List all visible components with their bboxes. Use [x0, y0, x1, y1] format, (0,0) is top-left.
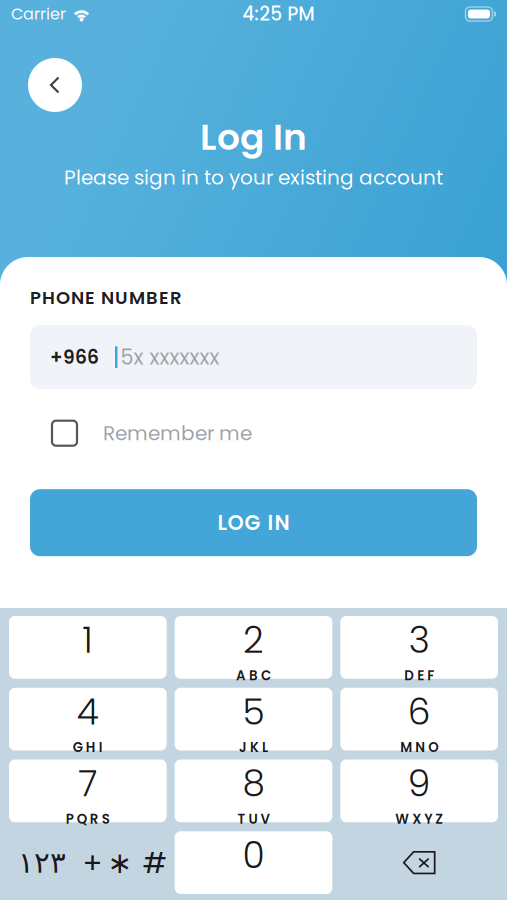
staticText: Remember me	[103, 419, 252, 447]
staticText: 6	[408, 687, 431, 737]
button[interactable]: Symbols	[81, 840, 169, 886]
staticText: 5x xxxxxxx	[120, 343, 219, 372]
staticText: 4	[77, 687, 99, 737]
button[interactable]: 9	[340, 759, 498, 822]
staticText: P H O N E N U M B E R	[30, 285, 182, 310]
button[interactable]: L O G I N	[30, 489, 477, 556]
button[interactable]: 0	[175, 831, 332, 894]
button[interactable]: 3	[340, 616, 498, 679]
staticText: 0	[242, 830, 264, 880]
staticText: M N O	[400, 738, 438, 757]
staticText: ١٢٣	[18, 846, 66, 880]
button[interactable]: 5	[175, 688, 332, 751]
button[interactable]: 6	[340, 688, 498, 751]
staticText: +966	[50, 344, 99, 370]
staticText: 7	[78, 758, 97, 809]
staticText: T U V	[237, 810, 269, 828]
staticText: Please sign in to your existing account	[64, 163, 443, 191]
staticText: 2	[243, 615, 264, 665]
staticText: W X Y Z	[395, 810, 443, 828]
button[interactable]: Arabic numerals	[15, 840, 69, 886]
staticText: L O G I N	[217, 508, 289, 537]
staticText: 4:25 PM	[242, 1, 314, 27]
staticText: + ∗ #	[82, 842, 167, 883]
button[interactable]: Back	[28, 58, 82, 112]
button[interactable]: Remember me	[30, 413, 477, 453]
staticText: A B C	[236, 666, 271, 685]
staticText: 9	[408, 758, 431, 809]
staticText: 3	[409, 615, 430, 665]
staticText: P Q R S	[66, 810, 110, 828]
staticText: 5	[242, 687, 264, 737]
staticText: G H I	[73, 738, 103, 757]
staticText: 1	[82, 615, 93, 665]
button[interactable]: 2	[175, 616, 332, 679]
staticText: 8	[242, 758, 264, 809]
staticText: Carrier	[11, 3, 66, 25]
button[interactable]: 7	[9, 759, 167, 822]
staticText: Log In	[200, 112, 307, 162]
button[interactable]: Delete	[340, 831, 498, 894]
button[interactable]: 4	[9, 688, 167, 751]
button[interactable]: 1	[9, 616, 167, 679]
staticText: J K L	[239, 738, 268, 757]
staticText: D E F	[404, 666, 434, 685]
button[interactable]: 8	[175, 759, 332, 822]
